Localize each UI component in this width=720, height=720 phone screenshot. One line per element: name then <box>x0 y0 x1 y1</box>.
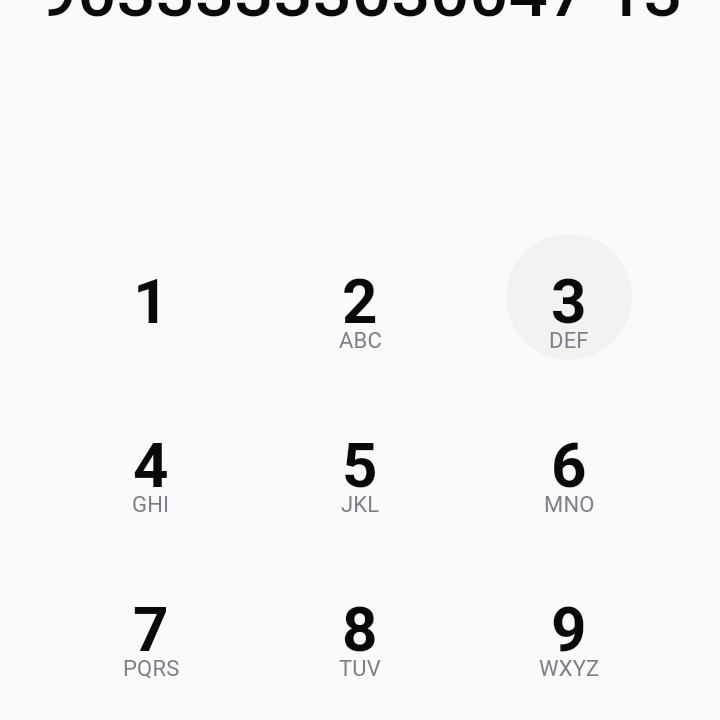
button[interactable]: 7 PQRS <box>88 562 214 688</box>
staticText: 4 <box>133 429 169 502</box>
staticText: 3 <box>551 265 587 338</box>
button[interactable]: 3 DEF <box>506 234 632 360</box>
staticText: WXYZ <box>539 656 600 682</box>
staticText: GHI <box>132 492 170 518</box>
button[interactable]: Dialed number <box>0 0 720 42</box>
staticText: TUV <box>339 656 382 682</box>
button[interactable]: 1 <box>88 234 214 360</box>
staticText: 8 <box>342 593 378 666</box>
button[interactable]: 4 GHI <box>88 398 214 524</box>
staticText: 6 <box>551 429 587 502</box>
staticText: 90333333030047 13 <box>38 0 683 33</box>
staticText: 1 <box>133 265 169 338</box>
button[interactable]: 2 ABC <box>297 234 423 360</box>
staticText: DEF <box>549 328 589 354</box>
staticText: JKL <box>341 492 380 518</box>
button[interactable]: 5 JKL <box>297 398 423 524</box>
staticText: 2 <box>342 265 378 338</box>
staticText: MNO <box>544 492 595 518</box>
button[interactable]: 8 TUV <box>297 562 423 688</box>
button[interactable]: 9 WXYZ <box>506 562 632 688</box>
button[interactable]: 6 MNO <box>506 398 632 524</box>
staticText: PQRS <box>123 656 180 682</box>
staticText: 5 <box>342 429 378 502</box>
staticText: 9 <box>551 593 587 666</box>
staticText: 7 <box>133 593 169 666</box>
staticText: ABC <box>339 328 382 354</box>
